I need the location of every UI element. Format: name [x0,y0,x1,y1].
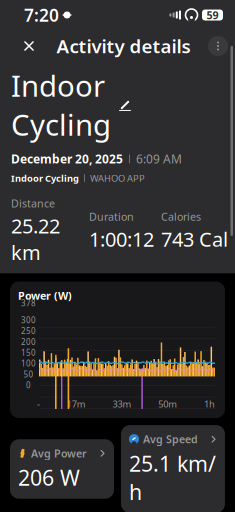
staticText: Avg Speed [143,432,198,446]
staticText: 7:20 [24,3,59,26]
staticText: 378 [21,298,36,308]
staticText: 17m [67,398,86,410]
staticText: 25.1 km/h [129,449,216,506]
staticText: 25.22 km [11,212,60,265]
staticText: Calories [161,209,201,224]
staticText: 300 [21,315,36,325]
button[interactable]: More options [203,31,233,61]
staticText: WAHOO APP [90,172,145,184]
staticText: 150 [21,347,36,358]
staticText: 1h [204,398,215,410]
staticText: 1:00:12 [89,226,154,252]
button[interactable]: Close [14,31,44,61]
staticText: Power (W) [18,288,72,303]
staticText: Indoor Cycling [11,66,111,144]
staticText: 100 [21,358,36,369]
staticText: 33m [112,398,131,410]
staticText: Indoor Cycling [11,172,79,184]
staticText: 206 W [18,463,80,492]
button[interactable]: Avg Speed [121,425,225,512]
button[interactable]: Avg Power [10,439,114,499]
staticText: 250 [21,326,36,336]
staticText: Distance [11,196,55,210]
staticText: - [37,398,40,410]
staticText: 743 Cal [161,226,228,252]
staticText: 59 [206,8,218,22]
staticText: Duration [89,209,134,224]
staticText: 6:09 AM [136,151,182,167]
staticText: 50m [158,398,177,410]
staticText: 200 [21,336,36,347]
staticText: December 20, 2025 [11,151,123,167]
button[interactable]: Edit title [117,97,133,113]
staticText: 0 [26,380,31,390]
staticText: Activity details [56,34,190,58]
staticText: Avg Power [31,446,87,460]
staticText: 50 [23,369,33,380]
